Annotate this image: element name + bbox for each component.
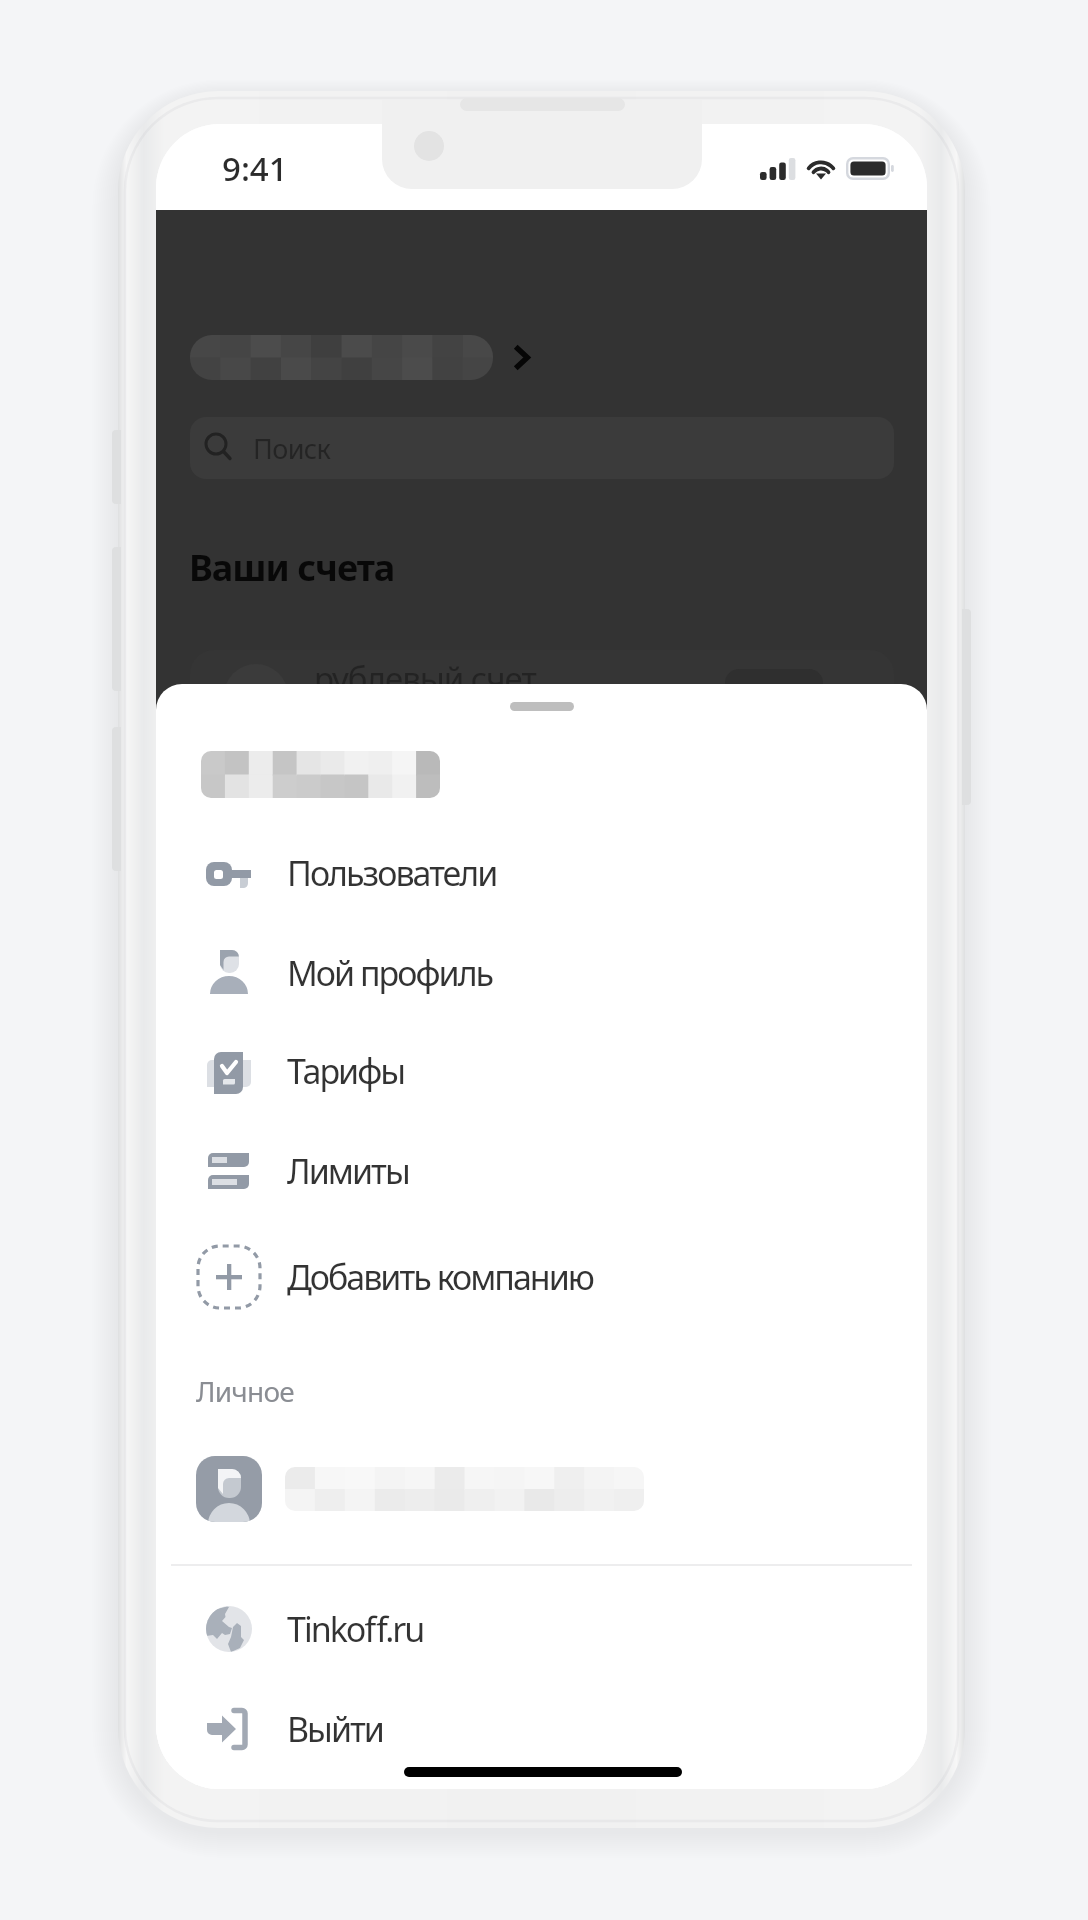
button[interactable] xyxy=(156,1439,927,1539)
staticText: Мой профиль xyxy=(287,950,493,996)
button[interactable]: Мой профиль xyxy=(156,923,927,1023)
button[interactable]: Лимиты xyxy=(156,1121,927,1221)
staticText: рублевый счет xyxy=(314,656,536,701)
button[interactable]: Тарифы xyxy=(156,1021,927,1121)
button[interactable]: Close sheet xyxy=(470,684,614,726)
staticText: Ваши счета xyxy=(189,543,395,592)
staticText: Личное xyxy=(196,1372,294,1410)
staticText: Добавить компанию xyxy=(287,1254,593,1300)
button[interactable]: Пользователи xyxy=(156,823,927,923)
button[interactable]: Current company xyxy=(190,328,550,386)
button[interactable]: Account: рублевый счет xyxy=(190,650,894,800)
staticText: Tinkoff.ru xyxy=(287,1606,424,1652)
button[interactable]: Добавить компанию xyxy=(156,1227,927,1327)
staticText: Поиск xyxy=(253,430,331,467)
staticText: 9:41 xyxy=(222,146,288,191)
button[interactable]: Tinkoff.ru xyxy=(156,1579,927,1679)
button[interactable]: Выйти xyxy=(156,1679,927,1779)
staticText: Выйти xyxy=(287,1706,383,1752)
staticText: Тарифы xyxy=(287,1048,405,1094)
staticText: Лимиты xyxy=(287,1148,409,1194)
staticText: Пользователи xyxy=(287,850,497,896)
